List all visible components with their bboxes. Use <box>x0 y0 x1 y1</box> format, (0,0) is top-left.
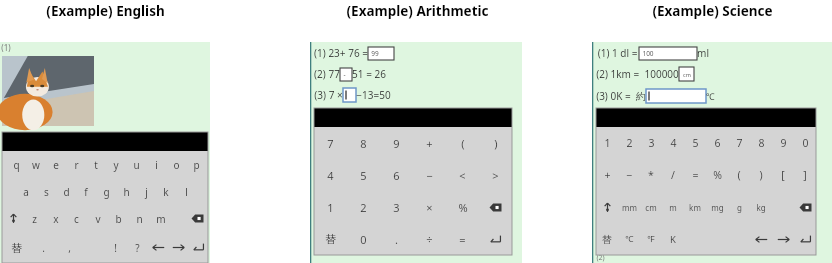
button[interactable]: ( <box>446 127 479 159</box>
button[interactable]: 4 <box>314 159 347 191</box>
button[interactable]: kg <box>750 191 772 223</box>
button[interactable]: cm <box>640 191 662 223</box>
button[interactable]: 7 <box>314 127 347 159</box>
button[interactable]: i <box>146 151 166 178</box>
button[interactable]: Move cursor right <box>168 232 188 263</box>
button[interactable]: , <box>56 232 82 263</box>
button[interactable]: Input method toolbar <box>314 108 512 127</box>
button[interactable]: 8 <box>347 127 380 159</box>
button[interactable]: n <box>129 205 150 232</box>
button[interactable]: ) <box>750 159 772 191</box>
button[interactable]: ) <box>479 127 512 159</box>
button[interactable]: Answer input field <box>646 89 706 103</box>
button[interactable]: o <box>166 151 186 178</box>
button[interactable]: Empty letter slot <box>134 155 150 170</box>
button[interactable]: 6 <box>380 159 413 191</box>
button[interactable]: 4 <box>662 127 684 159</box>
button[interactable]: = <box>446 223 479 255</box>
button[interactable]: c <box>94 155 110 170</box>
button[interactable]: ℉ <box>640 223 662 255</box>
button[interactable]: 替 <box>314 223 347 255</box>
button[interactable]: Move cursor left <box>148 232 168 263</box>
button[interactable]: [ <box>772 159 794 191</box>
button[interactable]: * <box>640 159 662 191</box>
button[interactable]: ] <box>794 159 816 191</box>
button[interactable]: > <box>479 159 512 191</box>
button[interactable]: j <box>136 178 156 205</box>
button[interactable]: h <box>116 178 136 205</box>
button[interactable]: 替 <box>2 232 30 263</box>
button[interactable]: ! <box>104 232 126 263</box>
button[interactable]: Backspace <box>479 191 512 223</box>
button[interactable]: 2 <box>618 127 640 159</box>
button[interactable]: z <box>24 205 45 232</box>
button[interactable]: 6 <box>706 127 728 159</box>
button[interactable]: ℃ <box>618 223 640 255</box>
button[interactable]: r <box>66 151 86 178</box>
button[interactable]: q <box>6 151 26 178</box>
button[interactable]: − <box>618 159 640 191</box>
button[interactable]: d <box>56 178 76 205</box>
button[interactable]: km <box>684 191 706 223</box>
button[interactable]: a <box>114 155 130 170</box>
button[interactable]: 9 <box>380 127 413 159</box>
button[interactable]: − <box>413 159 446 191</box>
button[interactable]: . <box>380 223 413 255</box>
button[interactable]: 0 <box>347 223 380 255</box>
button[interactable]: t <box>86 151 106 178</box>
button[interactable]: Answer input field <box>639 47 697 60</box>
button[interactable]: ? <box>126 232 148 263</box>
button[interactable]: Shift <box>2 205 24 232</box>
button[interactable]: % <box>446 191 479 223</box>
button[interactable]: 5 <box>684 127 706 159</box>
button[interactable]: 1 <box>596 127 618 159</box>
button[interactable]: ( <box>728 159 750 191</box>
button[interactable]: v <box>87 205 108 232</box>
button[interactable]: Backspace <box>186 205 208 232</box>
button[interactable]: mg <box>706 191 728 223</box>
button[interactable]: 替 <box>596 223 618 255</box>
button[interactable]: Backspace <box>794 191 816 223</box>
button[interactable]: l <box>176 178 196 205</box>
button[interactable]: Enter <box>188 232 208 263</box>
button[interactable]: Answer input field <box>340 68 352 81</box>
button[interactable]: s <box>36 178 56 205</box>
button[interactable]: m <box>150 205 171 232</box>
button[interactable]: w <box>26 151 46 178</box>
button[interactable]: Shift <box>596 191 618 223</box>
button[interactable]: c <box>66 205 87 232</box>
button[interactable]: mm <box>618 191 640 223</box>
button[interactable]: < <box>446 159 479 191</box>
button[interactable]: k <box>156 178 176 205</box>
button[interactable]: + <box>596 159 618 191</box>
button[interactable]: % <box>706 159 728 191</box>
button[interactable]: Answer input field <box>679 67 694 81</box>
button[interactable]: 7 <box>728 127 750 159</box>
button[interactable]: e <box>46 151 66 178</box>
button[interactable]: g <box>728 191 750 223</box>
button[interactable]: Input method toolbar <box>2 132 208 151</box>
button[interactable]: 3 <box>640 127 662 159</box>
button[interactable]: 8 <box>750 127 772 159</box>
button[interactable]: Move cursor right <box>772 223 794 255</box>
button[interactable]: . <box>30 232 56 263</box>
button[interactable]: Move cursor left <box>750 223 772 255</box>
button[interactable]: × <box>413 191 446 223</box>
button[interactable]: 3 <box>380 191 413 223</box>
button[interactable]: b <box>108 205 129 232</box>
button[interactable]: = <box>684 159 706 191</box>
button[interactable]: ÷ <box>413 223 446 255</box>
button[interactable]: 2 <box>347 191 380 223</box>
button[interactable]: + <box>413 127 446 159</box>
button[interactable]: / <box>662 159 684 191</box>
button[interactable]: Enter <box>794 223 816 255</box>
button[interactable]: Answer input field <box>343 88 356 102</box>
button[interactable]: p <box>186 151 206 178</box>
button[interactable]: 0 <box>794 127 816 159</box>
button[interactable]: u <box>126 151 146 178</box>
button[interactable]: g <box>96 178 116 205</box>
button[interactable]: x <box>45 205 66 232</box>
button[interactable]: a <box>16 178 36 205</box>
button[interactable]: y <box>106 151 126 178</box>
button[interactable]: m <box>662 191 684 223</box>
